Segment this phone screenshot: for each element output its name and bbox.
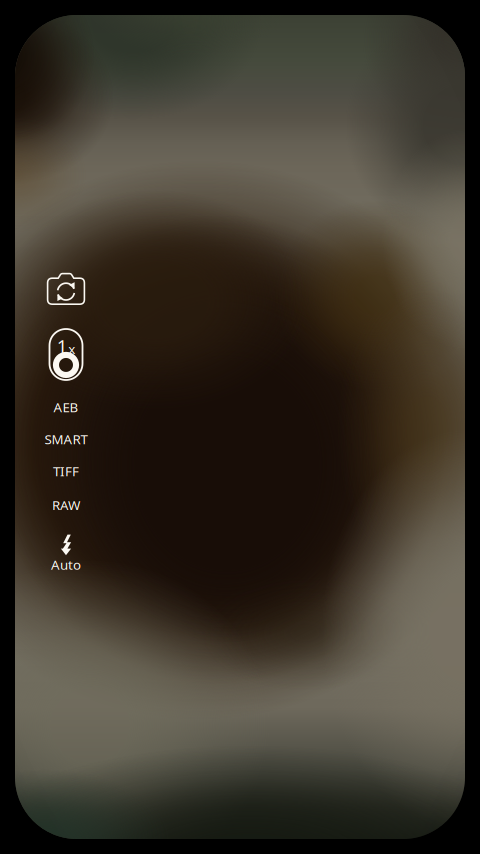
- button[interactable]: AEB: [28, 391, 104, 423]
- staticText: RAW: [52, 496, 80, 514]
- staticText: Auto: [51, 556, 81, 573]
- button[interactable]: Switch camera: [28, 269, 104, 309]
- staticText: 1: [57, 333, 68, 358]
- button[interactable]: Flash auto: [28, 530, 104, 578]
- staticText: TIFF: [53, 462, 79, 480]
- button[interactable]: 1x zoom: [28, 326, 104, 383]
- button[interactable]: RAW: [28, 489, 104, 521]
- button[interactable]: TIFF: [28, 455, 104, 487]
- staticText: x: [68, 340, 75, 358]
- staticText: AEB: [53, 398, 78, 416]
- button[interactable]: SMART: [28, 423, 104, 455]
- staticText: SMART: [44, 430, 87, 448]
